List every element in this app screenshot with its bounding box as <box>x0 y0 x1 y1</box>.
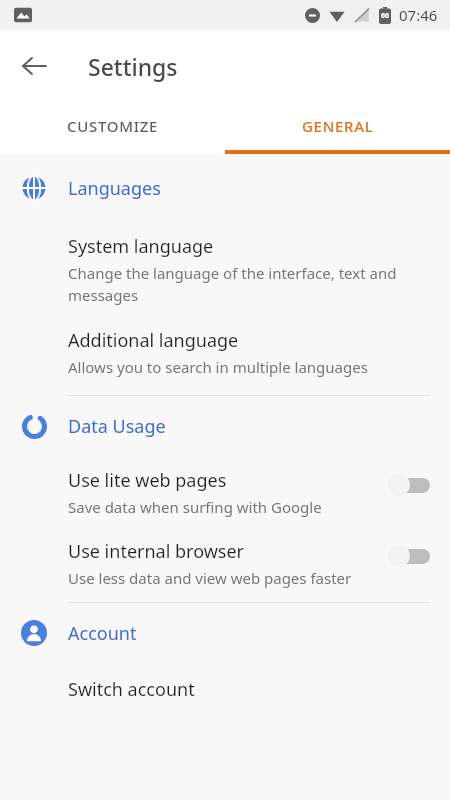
button[interactable]: Use internal browser <box>0 539 450 588</box>
button[interactable]: Data Usage <box>0 408 450 444</box>
button[interactable]: Account <box>0 615 450 651</box>
button[interactable]: Toggle <box>388 473 434 497</box>
staticText: Change the language of the interface, te… <box>68 263 426 306</box>
staticText: Use less data and view web pages faster <box>68 568 352 588</box>
button[interactable]: Back <box>8 40 60 92</box>
button[interactable]: Switch account <box>0 677 450 702</box>
staticText: Use lite web pages <box>68 468 227 493</box>
staticText: Use internal browser <box>68 539 245 564</box>
other: Account <box>21 620 47 646</box>
staticText: Save data when surfing with Google <box>68 497 322 517</box>
button[interactable]: Languages <box>0 170 450 206</box>
button[interactable]: GENERAL <box>225 102 450 150</box>
button[interactable]: Use lite web pages <box>0 468 450 517</box>
staticText: System language <box>68 234 214 259</box>
staticText: Switch account <box>68 677 195 702</box>
staticText: CUSTOMIZE <box>67 116 159 136</box>
staticText: Languages <box>68 176 161 201</box>
button[interactable]: Toggle <box>388 544 434 568</box>
other: Languages <box>21 175 47 201</box>
staticText: Account <box>68 621 137 646</box>
button[interactable]: Additional language <box>0 328 450 377</box>
staticText: GENERAL <box>302 116 374 136</box>
button[interactable]: CUSTOMIZE <box>0 102 225 150</box>
staticText: 66 <box>381 11 390 21</box>
other: Data Usage <box>22 414 47 439</box>
button[interactable]: System language <box>0 234 450 306</box>
staticText: Data Usage <box>68 414 166 439</box>
staticText: Additional language <box>68 328 239 353</box>
staticText: Settings <box>88 51 178 82</box>
staticText: Allows you to search in multiple languag… <box>68 357 368 377</box>
staticText: 07:46 <box>399 5 438 25</box>
